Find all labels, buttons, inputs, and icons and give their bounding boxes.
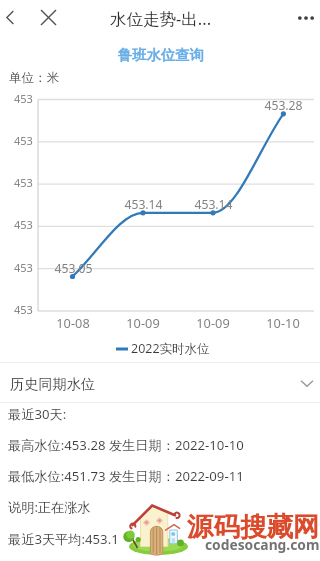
staticText: 453 <box>14 260 33 275</box>
button[interactable]: More options <box>293 5 319 31</box>
staticText: 453.28 <box>264 97 303 114</box>
staticText: 鲁班水位查询 <box>118 46 204 64</box>
staticText: 最近30天: <box>8 405 67 423</box>
staticText: 10-10 <box>266 314 300 331</box>
staticText: 10-09 <box>196 314 230 331</box>
staticText: codesocang.com <box>205 535 320 554</box>
staticText: 453 <box>14 91 33 106</box>
button[interactable]: Close <box>35 4 61 30</box>
staticText: 453.14 <box>194 196 233 213</box>
staticText: 453 <box>14 302 33 317</box>
staticText: 10-08 <box>56 314 90 331</box>
staticText: 说明:正在涨水 <box>8 498 91 516</box>
staticText: 453 <box>14 133 33 148</box>
button[interactable]: 历史同期水位 <box>0 365 320 402</box>
staticText: 单位：米 <box>9 70 59 86</box>
staticText: 最近3天平均:453.1 <box>8 530 119 548</box>
staticText: 水位走势-出... <box>110 7 212 30</box>
button[interactable]: Back <box>0 4 23 30</box>
staticText: 2022实时水位 <box>131 340 210 357</box>
staticText: 最低水位:451.73 发生日期：2022-09-11 <box>8 467 244 485</box>
staticText: 源码搜藏网 <box>187 510 320 543</box>
staticText: 453.05 <box>54 260 93 277</box>
staticText: 历史同期水位 <box>10 375 96 393</box>
button[interactable]: 鲁班水位查询 <box>118 46 204 64</box>
staticText: 453 <box>14 175 33 190</box>
staticText: 最高水位:453.28 发生日期：2022-10-10 <box>8 436 244 454</box>
staticText: 453 <box>14 217 33 232</box>
staticText: 10-09 <box>126 314 160 331</box>
staticText: 453.14 <box>124 196 163 213</box>
